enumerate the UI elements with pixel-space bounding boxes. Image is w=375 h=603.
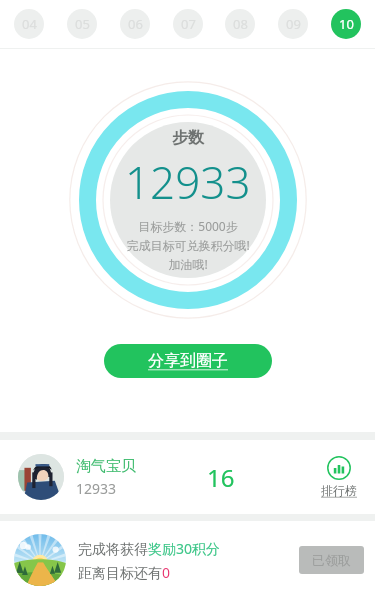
staticText: 目标步数：5000步	[138, 218, 238, 234]
staticText: 距离目标还有0	[78, 563, 171, 582]
staticText: 完成目标可兑换积分哦!	[126, 237, 250, 253]
staticText: 已领取	[312, 552, 351, 568]
staticText: 淘气宝贝	[76, 457, 136, 476]
staticText: 完成将获得奖励30积分	[78, 539, 221, 558]
staticText: 12933	[125, 152, 251, 212]
staticText: 07	[181, 15, 196, 33]
staticText: 08	[233, 15, 248, 33]
staticText: 06	[128, 15, 143, 33]
button[interactable]: 04	[14, 9, 44, 39]
button[interactable]: 已领取	[299, 546, 364, 574]
button[interactable]: 淘气宝贝	[0, 440, 375, 514]
staticText: 09	[286, 15, 301, 33]
button[interactable]: 06	[120, 9, 150, 39]
staticText: 05	[75, 15, 90, 33]
staticText: 12933	[76, 479, 117, 498]
staticText: 排行榜	[321, 483, 357, 498]
staticText: 步数	[172, 128, 204, 148]
staticText: 分享到圈子	[148, 351, 228, 371]
button[interactable]: 07	[173, 9, 203, 39]
staticText: 加油哦!	[168, 256, 208, 272]
staticText: 16	[207, 461, 235, 494]
button[interactable]: 09	[278, 9, 308, 39]
button[interactable]: 08	[225, 9, 255, 39]
staticText: 10	[339, 15, 354, 33]
button[interactable]: 排行榜	[317, 456, 361, 498]
button[interactable]: 10	[331, 9, 361, 39]
button[interactable]: 分享到圈子	[104, 344, 272, 378]
staticText: 04	[22, 15, 37, 33]
button[interactable]: 05	[67, 9, 97, 39]
